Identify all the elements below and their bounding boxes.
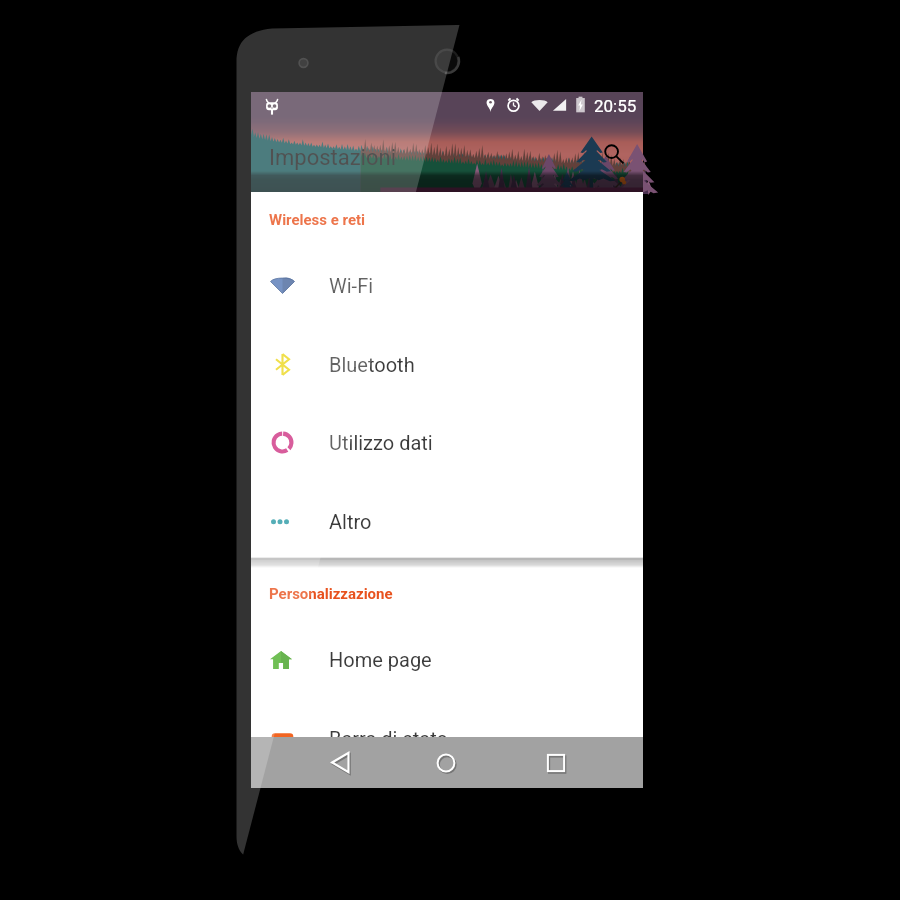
staticText: Personalizzazione bbox=[269, 585, 393, 603]
staticText: Bluetooth bbox=[329, 353, 415, 376]
button[interactable]: Wi-Fi bbox=[251, 246, 643, 324]
staticText: Utilizzo dati bbox=[329, 431, 433, 454]
staticText: Home page bbox=[329, 648, 432, 671]
button[interactable]: Bluetooth bbox=[251, 325, 643, 403]
staticText: Barra di stato bbox=[329, 727, 448, 750]
button[interactable]: Barra di stato bbox=[251, 699, 643, 777]
staticText: Impostazioni bbox=[269, 145, 397, 171]
button[interactable]: Search bbox=[595, 135, 633, 173]
button[interactable]: Back bbox=[310, 737, 370, 788]
staticText: Wi-Fi bbox=[329, 274, 374, 297]
button[interactable]: Home bbox=[416, 737, 476, 788]
button[interactable]: Recent apps bbox=[526, 737, 586, 788]
button[interactable]: Altro bbox=[251, 482, 643, 560]
staticText: Wireless e reti bbox=[269, 211, 366, 229]
staticText: 20:55 bbox=[594, 96, 637, 116]
button[interactable]: Home page bbox=[251, 620, 643, 698]
staticText: Altro bbox=[329, 510, 372, 533]
button[interactable]: Utilizzo dati bbox=[251, 403, 643, 481]
